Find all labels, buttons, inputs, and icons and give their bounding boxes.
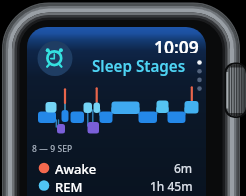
staticText: 1h 45m: [150, 178, 193, 194]
button[interactable]: [32, 157, 198, 174]
staticText: Awake: [55, 160, 97, 178]
staticText: Sleep Stages: [92, 56, 186, 77]
staticText: 8 — 9 SEP: [32, 143, 73, 155]
button[interactable]: [38, 41, 73, 76]
button[interactable]: Sleep Stages: [85, 55, 186, 77]
button[interactable]: [32, 84, 204, 136]
button[interactable]: [32, 175, 198, 192]
staticText: 10:09: [154, 35, 199, 53]
staticText: REM: [55, 178, 83, 196]
staticText: 6m: [174, 160, 193, 176]
